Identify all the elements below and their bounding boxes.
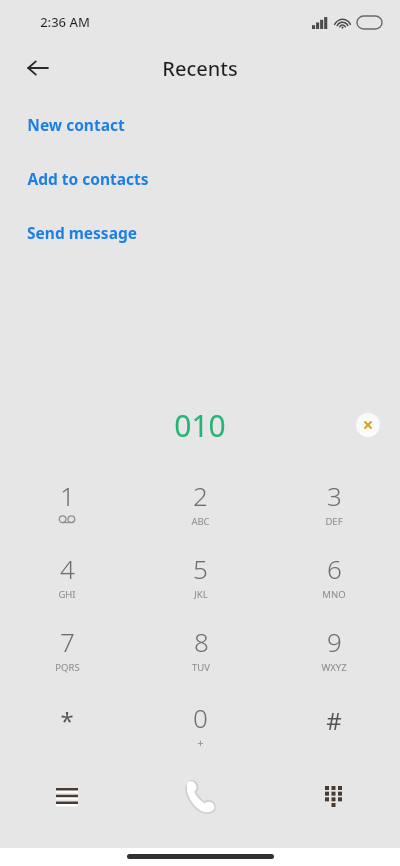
staticText: 2 — [193, 478, 208, 513]
staticText: 7 — [60, 624, 75, 659]
button[interactable]: Add to contacts — [0, 162, 400, 194]
button[interactable]: * — [0, 694, 134, 758]
staticText: 1 — [60, 478, 75, 513]
button[interactable]: 6 — [267, 543, 400, 607]
staticText: Add to contacts — [27, 168, 149, 189]
button[interactable]: 5 — [134, 543, 267, 607]
button[interactable]: 2 — [134, 470, 267, 534]
staticText: GHI — [58, 588, 76, 601]
button[interactable]: Dialpad — [267, 765, 400, 827]
button[interactable]: Send message — [0, 216, 400, 248]
button[interactable]: Delete — [356, 413, 380, 437]
staticText: JKL — [194, 588, 208, 601]
staticText: * — [60, 704, 74, 737]
staticText: Recents — [162, 55, 238, 82]
staticText: TUV — [192, 661, 210, 674]
button[interactable]: 0 — [134, 694, 267, 758]
button[interactable]: Back — [18, 48, 58, 88]
button[interactable]: 8 — [134, 616, 267, 680]
staticText: # — [326, 704, 342, 737]
staticText: 5 — [193, 551, 208, 586]
staticText: 010 — [174, 405, 226, 446]
staticText: WXYZ — [321, 661, 347, 674]
staticText: Send message — [27, 222, 137, 243]
staticText: DEF — [325, 515, 343, 528]
staticText: + — [197, 735, 204, 750]
staticText: 2:36 AM — [40, 13, 90, 31]
button[interactable]: 3 — [267, 470, 400, 534]
staticText: 8 — [194, 624, 209, 659]
staticText: 3 — [327, 478, 342, 513]
staticText: PQRS — [55, 661, 80, 674]
button[interactable]: Call — [134, 765, 267, 827]
button[interactable]: 7 — [0, 616, 134, 680]
button[interactable]: New contact — [0, 108, 400, 140]
staticText: ABC — [191, 515, 210, 528]
button[interactable]: 4 — [0, 543, 134, 607]
staticText: 0 — [193, 700, 208, 735]
staticText: 9 — [327, 624, 342, 659]
button[interactable]: 1 — [0, 470, 134, 534]
staticText: MNO — [322, 588, 346, 601]
staticText: New contact — [27, 114, 125, 135]
button[interactable]: 9 — [267, 616, 400, 680]
button[interactable]: Call log menu — [0, 765, 134, 827]
staticText: 6 — [327, 551, 342, 586]
staticText: 4 — [60, 551, 75, 586]
button[interactable]: # — [267, 694, 400, 758]
